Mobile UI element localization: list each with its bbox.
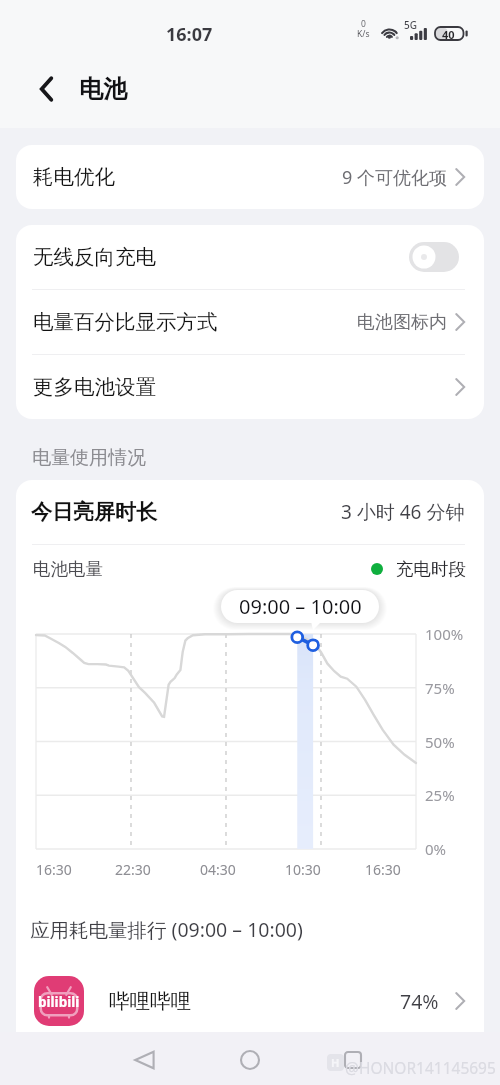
- staticText: @HONOR141145695: [345, 1057, 496, 1078]
- staticText: 3 小时 46 分钟: [341, 499, 465, 525]
- staticText: 10:30: [285, 860, 321, 879]
- staticText: 充电时段: [396, 558, 466, 580]
- staticText: 电量使用情况: [32, 446, 146, 470]
- staticText: H: [331, 1055, 340, 1070]
- staticText: K/s: [357, 28, 370, 40]
- button[interactable]: 最近任务: [331, 1038, 375, 1082]
- staticText: bilibili: [38, 993, 80, 1011]
- staticText: 9 个可优化项: [342, 165, 447, 190]
- button[interactable]: 返回: [122, 1038, 166, 1082]
- button[interactable]: 无线反向充电: [16, 225, 484, 289]
- staticText: 今日亮屏时长: [31, 499, 157, 525]
- staticText: 25%: [425, 785, 455, 805]
- staticText: 耗电优化: [33, 164, 115, 190]
- staticText: 0: [361, 18, 366, 30]
- staticText: 电池电量: [33, 558, 103, 580]
- staticText: 应用耗电量排行 (09:00 – 10:00): [30, 916, 303, 943]
- button[interactable]: 主页: [228, 1038, 272, 1082]
- staticText: 75%: [425, 678, 455, 698]
- staticText: 16:30: [365, 860, 401, 879]
- staticText: 无线反向充电: [33, 244, 156, 270]
- button[interactable]: 电量百分比显示方式: [16, 290, 484, 354]
- staticText: 09:00 – 10:00: [239, 593, 362, 620]
- staticText: 电量百分比显示方式: [33, 309, 218, 335]
- staticText: 更多电池设置: [33, 374, 156, 400]
- button[interactable]: 耗电优化: [16, 145, 484, 209]
- button[interactable]: bilibili: [16, 966, 484, 1036]
- staticText: 74%: [400, 988, 439, 1015]
- button[interactable]: 返回: [27, 70, 65, 108]
- staticText: 5G: [404, 18, 417, 32]
- staticText: 50%: [425, 732, 455, 752]
- staticText: 100%: [425, 624, 464, 644]
- staticText: 电池图标内: [357, 311, 447, 334]
- button[interactable]: 无线反向充电 开关: [409, 242, 459, 272]
- staticText: 16:07: [166, 22, 213, 47]
- staticText: 04:30: [200, 860, 236, 879]
- staticText: 40: [442, 27, 455, 42]
- button[interactable]: 更多电池设置: [16, 355, 484, 419]
- staticText: 22:30: [115, 860, 151, 879]
- staticText: 电池: [79, 74, 127, 104]
- staticText: 哔哩哔哩: [109, 988, 191, 1014]
- staticText: 16:30: [36, 860, 72, 879]
- staticText: 0%: [425, 839, 447, 859]
